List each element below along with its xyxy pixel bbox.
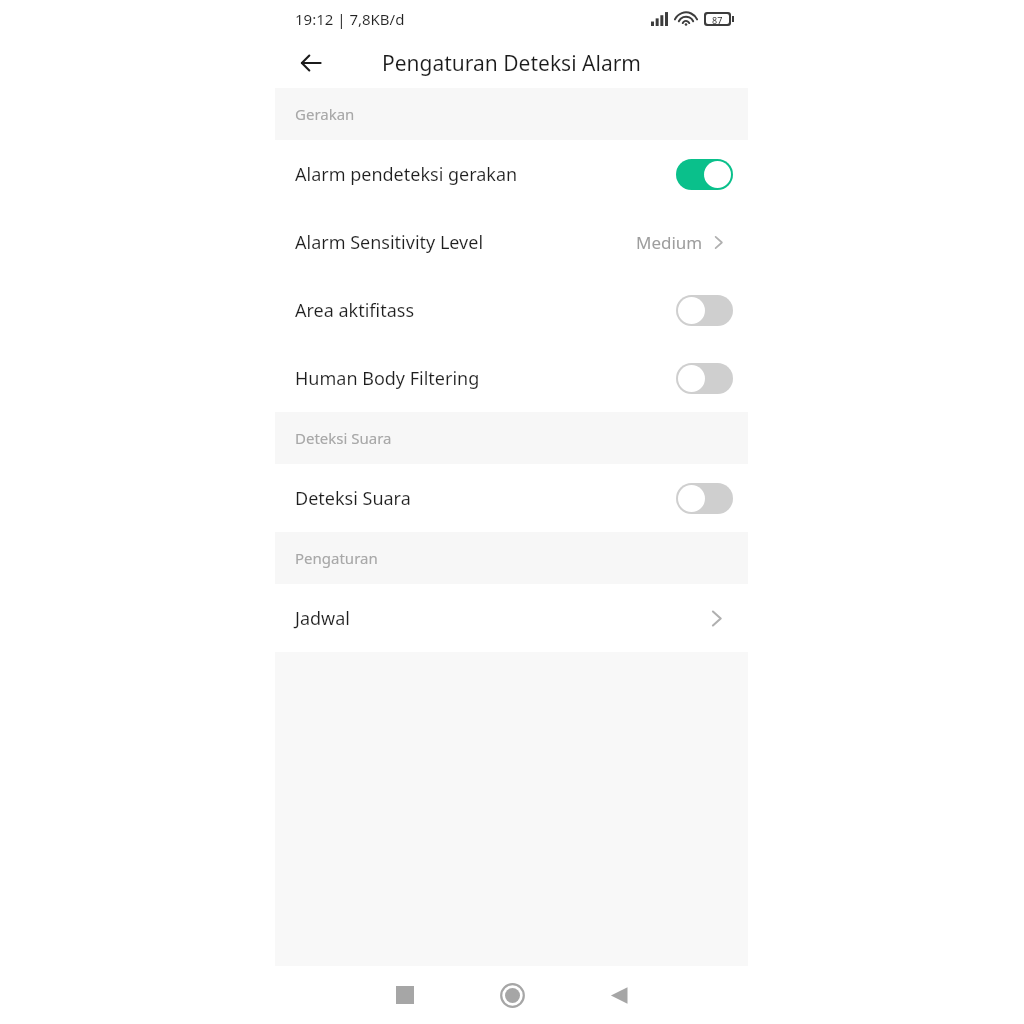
button[interactable]: Toggle off	[676, 295, 733, 326]
staticText: Medium	[636, 231, 703, 254]
button[interactable]: Area aktifitass	[275, 276, 748, 344]
staticText: Human Body Filtering	[295, 366, 480, 391]
button[interactable]: Back	[290, 42, 332, 84]
staticText: Alarm Sensitivity Level	[295, 230, 484, 255]
staticText: Deteksi Suara	[295, 486, 411, 511]
staticText: Area aktifitass	[295, 298, 415, 323]
button[interactable]: Back	[590, 966, 648, 1024]
button[interactable]: Recents	[376, 966, 434, 1024]
staticText: 87	[712, 14, 723, 24]
button[interactable]: Toggle off	[676, 363, 733, 394]
staticText: Pengaturan	[295, 548, 378, 568]
button[interactable]: Home	[483, 966, 541, 1024]
staticText: Pengaturan Deteksi Alarm	[382, 49, 641, 78]
button[interactable]: Toggle off	[676, 483, 733, 514]
staticText: Alarm pendeteksi gerakan	[295, 162, 518, 187]
staticText: Deteksi Suara	[295, 428, 392, 448]
button[interactable]: Toggle on	[676, 159, 733, 190]
button[interactable]: Human Body Filtering	[275, 344, 748, 412]
staticText: Jadwal	[295, 606, 350, 631]
button[interactable]: Alarm pendeteksi gerakan	[275, 140, 748, 208]
button[interactable]: Jadwal	[275, 584, 748, 652]
staticText: Gerakan	[295, 104, 355, 124]
staticText: 19:12 | 7,8KB/d	[295, 9, 405, 29]
button[interactable]: Deteksi Suara	[275, 464, 748, 532]
button[interactable]: Alarm Sensitivity Level	[275, 208, 748, 276]
